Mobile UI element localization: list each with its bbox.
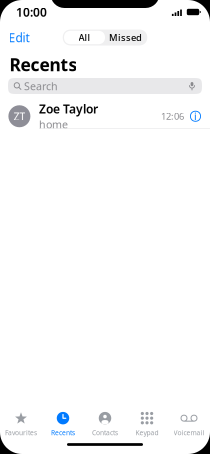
button[interactable]: ZT bbox=[0, 104, 210, 129]
button[interactable]: Favourites bbox=[0, 404, 42, 437]
button[interactable]: Search bbox=[8, 78, 202, 94]
button[interactable]: All bbox=[64, 31, 105, 44]
staticText: Voicemail bbox=[173, 428, 204, 437]
button[interactable]: Keypad bbox=[126, 404, 168, 437]
button[interactable]: Voicemail bbox=[168, 404, 210, 437]
staticText: Edit bbox=[8, 29, 29, 45]
staticText: Recents bbox=[51, 428, 75, 437]
button[interactable]: Contacts bbox=[84, 404, 126, 437]
staticText: ZT bbox=[13, 109, 25, 123]
staticText: Recents bbox=[9, 53, 77, 76]
staticText: Search bbox=[24, 79, 58, 93]
button[interactable]: Edit bbox=[0, 26, 34, 48]
staticText: 10:00 bbox=[16, 4, 47, 20]
staticText: 12:06 bbox=[161, 110, 184, 122]
staticText: home bbox=[39, 117, 68, 132]
staticText: Keypad bbox=[135, 428, 158, 437]
button[interactable]: Missed bbox=[105, 31, 146, 44]
staticText: Missed bbox=[109, 31, 142, 44]
staticText: Favourites bbox=[5, 428, 37, 437]
staticText: All bbox=[78, 31, 90, 44]
staticText: Zoe Taylor bbox=[39, 101, 98, 117]
staticText: Contacts bbox=[92, 428, 118, 437]
staticText: i bbox=[194, 109, 197, 123]
button[interactable]: Recents bbox=[42, 404, 84, 437]
